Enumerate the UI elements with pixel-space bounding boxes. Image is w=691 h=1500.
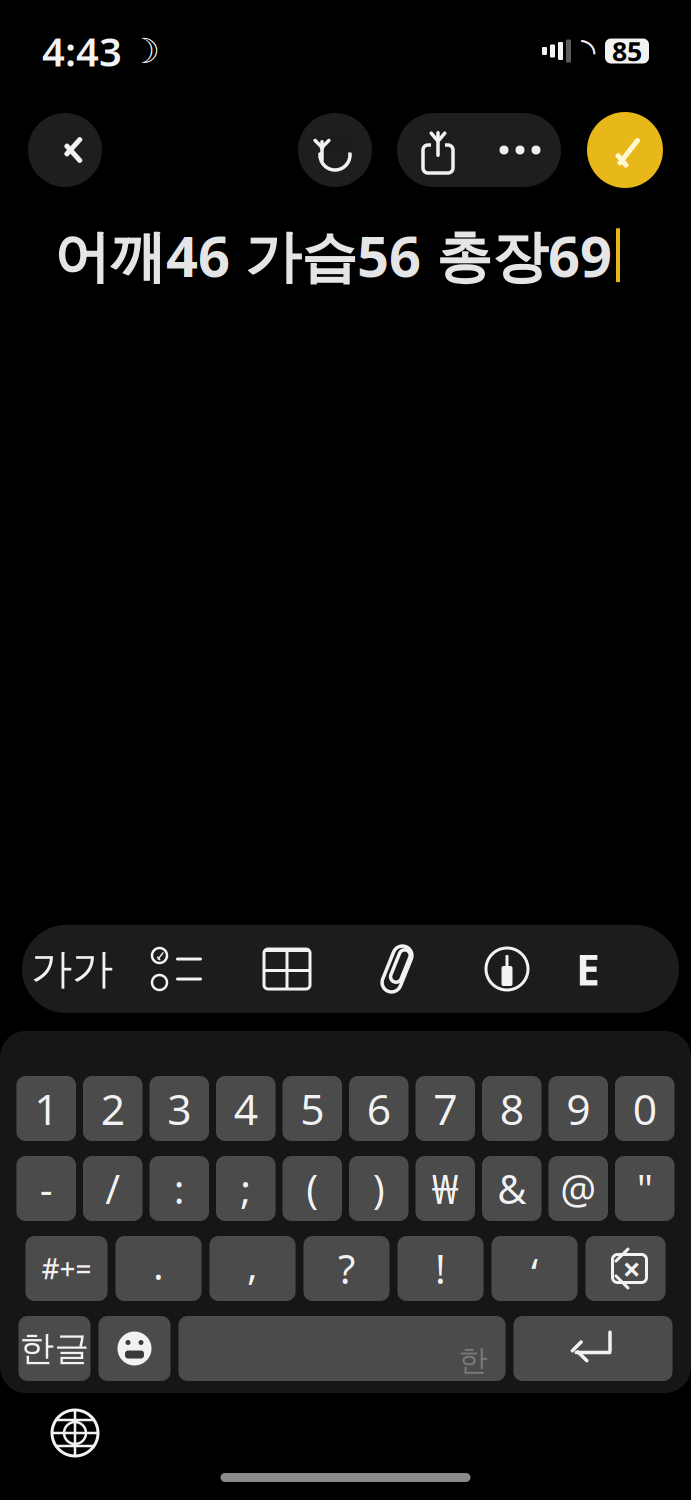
staticText: @ (560, 1162, 596, 1215)
button[interactable]: Checklist (122, 933, 232, 1005)
button[interactable]: ₩ (415, 1156, 475, 1221)
staticText: ? (338, 1242, 355, 1295)
staticText: & (497, 1162, 526, 1215)
staticText: ‘ (531, 1246, 538, 1299)
button[interactable]: Back (28, 113, 102, 187)
staticText: ◝ (581, 30, 595, 72)
button[interactable]: 9 (548, 1076, 608, 1141)
button[interactable]: ? (303, 1236, 389, 1301)
button[interactable]: 3 (149, 1076, 209, 1141)
button[interactable]: / (83, 1156, 142, 1221)
button[interactable]: 한글 (18, 1316, 90, 1381)
button[interactable]: ; (216, 1156, 275, 1221)
button[interactable]: 0 (615, 1076, 674, 1141)
staticText: 6 (367, 1080, 391, 1137)
staticText: 1 (34, 1080, 58, 1137)
staticText: 9 (566, 1080, 590, 1137)
staticText: ₩ (432, 1162, 459, 1215)
button[interactable]: 1 (16, 1076, 76, 1141)
button[interactable]: Space (178, 1316, 505, 1381)
staticText: 2 (101, 1080, 125, 1137)
button[interactable]: ! (397, 1236, 483, 1301)
staticText: 5 (300, 1080, 324, 1137)
button[interactable]: Text format (22, 933, 122, 1005)
button[interactable]: 8 (482, 1076, 541, 1141)
staticText: 한글 (19, 1327, 89, 1370)
staticText: 한 (458, 1342, 487, 1378)
button[interactable]: Return (513, 1316, 672, 1381)
staticText: × (622, 1247, 640, 1290)
staticText: 가가 (31, 944, 113, 994)
staticText: ; (240, 1162, 251, 1215)
button[interactable]: @ (548, 1156, 608, 1221)
staticText: / (105, 1162, 120, 1215)
staticText: : (174, 1162, 185, 1215)
button[interactable]: Undo (298, 113, 372, 187)
staticText: " (637, 1162, 653, 1215)
button[interactable]: 5 (282, 1076, 342, 1141)
button[interactable]: - (16, 1156, 76, 1221)
button[interactable]: More tools (562, 933, 614, 1005)
staticText: ( (306, 1162, 318, 1215)
button[interactable]: & (482, 1156, 541, 1221)
button[interactable]: More (479, 113, 561, 187)
button[interactable]: Emoji (98, 1316, 170, 1381)
button[interactable]: #+= (25, 1236, 107, 1301)
button[interactable]: Table (232, 933, 342, 1005)
staticText: 0 (633, 1080, 657, 1137)
staticText: ) (373, 1162, 385, 1215)
button[interactable]: 4 (216, 1076, 275, 1141)
staticText: 어깨46 가습56 총장69 (54, 218, 612, 292)
button[interactable]: Delete (585, 1236, 665, 1301)
staticText: 3 (167, 1080, 191, 1137)
button[interactable]: Markup (452, 933, 562, 1005)
button[interactable]: ‘ (491, 1236, 577, 1301)
staticText: 4 (234, 1080, 258, 1137)
button[interactable]: : (149, 1156, 209, 1221)
staticText: 4:43 (42, 24, 122, 77)
button[interactable]: , (209, 1236, 295, 1301)
staticText: 8 (500, 1080, 524, 1137)
staticText: #+= (41, 1250, 91, 1287)
staticText: 7 (433, 1080, 457, 1137)
staticText: E (576, 941, 600, 997)
staticText: - (40, 1162, 53, 1215)
staticText: ! (435, 1242, 446, 1295)
staticText: . (153, 1238, 164, 1291)
button[interactable]: 6 (349, 1076, 408, 1141)
staticText: 85 (612, 33, 642, 69)
staticText: , (247, 1238, 258, 1291)
button[interactable]: 7 (415, 1076, 475, 1141)
button[interactable]: Attach file (342, 933, 452, 1005)
button[interactable]: 2 (83, 1076, 142, 1141)
button[interactable]: " (615, 1156, 674, 1221)
staticText: ☽ (129, 31, 160, 71)
button[interactable]: . (115, 1236, 201, 1301)
button[interactable]: Done (587, 112, 663, 188)
button[interactable]: ) (349, 1156, 408, 1221)
button[interactable]: ( (282, 1156, 342, 1221)
button[interactable]: Share (397, 113, 479, 187)
button[interactable]: Switch keyboard (40, 1398, 110, 1468)
